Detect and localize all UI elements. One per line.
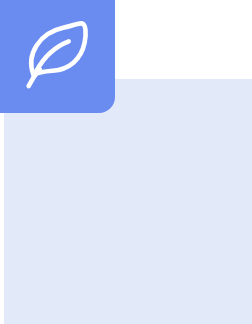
other: Eco leaf [19, 15, 93, 89]
button[interactable]: Eco leaf [0, 0, 115, 113]
